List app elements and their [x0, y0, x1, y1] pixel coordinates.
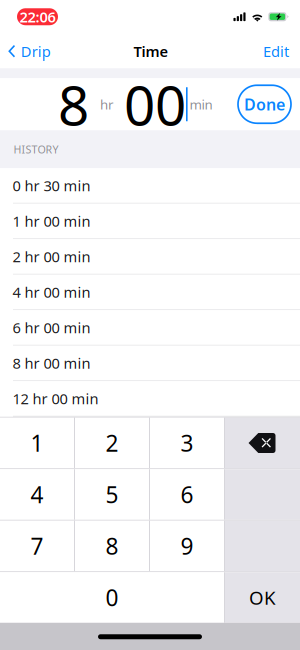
- staticText: HISTORY: [13, 142, 58, 156]
- staticText: 0 hr 30 min: [12, 176, 90, 195]
- staticText: min: [190, 95, 213, 113]
- staticText: 2: [105, 428, 118, 458]
- staticText: 9: [180, 531, 193, 561]
- button[interactable]: 3: [150, 418, 224, 468]
- button[interactable]: OK: [225, 572, 300, 623]
- button[interactable]: 9: [150, 521, 224, 571]
- staticText: 8: [58, 68, 89, 141]
- staticText: 4: [30, 479, 43, 509]
- staticText: 12 hr 00 min: [12, 389, 98, 408]
- staticText: 5: [105, 479, 118, 509]
- button[interactable]: Drip: [0, 35, 51, 67]
- staticText: 3: [180, 428, 193, 458]
- button[interactable]: 6 hr 00 min: [0, 310, 300, 346]
- staticText: OK: [249, 585, 276, 610]
- button[interactable]: 4: [0, 469, 74, 520]
- staticText: 1: [30, 428, 43, 458]
- staticText: hr: [100, 95, 114, 113]
- staticText: 4 hr 00 min: [12, 282, 90, 302]
- button[interactable]: 7: [0, 521, 74, 571]
- staticText: 8: [105, 531, 118, 561]
- button[interactable]: 12 hr 00 min: [0, 381, 300, 417]
- button[interactable]: 8: [75, 521, 149, 571]
- staticText: 7: [30, 531, 43, 561]
- button[interactable]: 0 hr 30 min: [0, 168, 300, 204]
- staticText: 00: [124, 68, 186, 141]
- staticText: Edit: [263, 41, 289, 61]
- button[interactable]: Done: [238, 85, 291, 123]
- staticText: 6 hr 00 min: [12, 318, 90, 337]
- button[interactable]: 2: [75, 418, 149, 468]
- staticText: 6: [180, 479, 193, 509]
- button[interactable]: 8 hr 00 min: [0, 346, 300, 381]
- button[interactable]: 0: [0, 572, 224, 623]
- staticText: Drip: [21, 41, 51, 61]
- staticText: 2 hr 00 min: [12, 247, 90, 266]
- staticText: 8 hr 00 min: [12, 353, 90, 373]
- button[interactable]: Delete: [225, 418, 300, 468]
- staticText: Done: [244, 94, 285, 115]
- button[interactable]: 2 hr 00 min: [0, 239, 300, 275]
- button[interactable]: 6: [150, 469, 224, 520]
- button[interactable]: 1 hr 00 min: [0, 204, 300, 239]
- button[interactable]: 4 hr 00 min: [0, 275, 300, 310]
- staticText: 22:06: [19, 7, 55, 26]
- staticText: Time: [133, 41, 168, 61]
- staticText: 1 hr 00 min: [12, 211, 90, 231]
- button[interactable]: 1: [0, 418, 74, 468]
- button[interactable]: Edit: [263, 35, 300, 67]
- staticText: 0: [105, 582, 118, 612]
- button[interactable]: 5: [75, 469, 149, 520]
